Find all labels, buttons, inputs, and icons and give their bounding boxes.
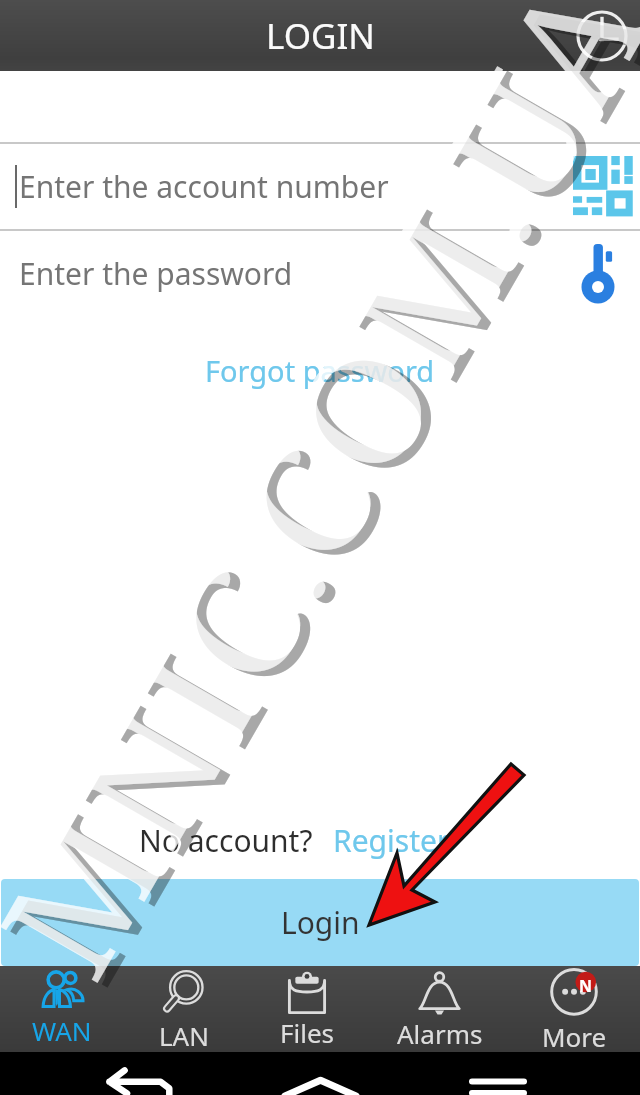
button[interactable]: Enter the account number bbox=[0, 144, 640, 229]
staticText: Enter the password bbox=[19, 253, 293, 294]
staticText: N bbox=[579, 975, 593, 997]
staticText: Files bbox=[280, 1015, 335, 1050]
button[interactable]: Files bbox=[243, 966, 371, 1052]
button[interactable]: Login bbox=[1, 879, 639, 966]
button[interactable]: Recents bbox=[469, 1079, 527, 1095]
button[interactable]: N bbox=[508, 966, 640, 1052]
staticText: No account? bbox=[139, 820, 313, 861]
button[interactable]: Back bbox=[100, 1065, 182, 1095]
button[interactable]: Alarms bbox=[371, 966, 508, 1052]
button[interactable]: Register bbox=[333, 820, 450, 861]
staticText: Alarms bbox=[397, 1016, 483, 1051]
staticText: WAN bbox=[32, 1013, 92, 1048]
button[interactable]: History bbox=[575, 9, 629, 63]
button[interactable]: Home bbox=[285, 1077, 356, 1095]
staticText: Enter the account number bbox=[19, 166, 389, 207]
staticText: LAN bbox=[159, 1018, 209, 1052]
button[interactable]: Show password bbox=[571, 241, 637, 307]
button[interactable]: WAN bbox=[0, 966, 124, 1052]
button[interactable]: Scan QR code bbox=[571, 154, 637, 220]
staticText: Login bbox=[281, 902, 360, 943]
button[interactable]: Forgot password bbox=[205, 351, 435, 390]
button[interactable]: Enter the password bbox=[0, 231, 640, 316]
staticText: LOGIN bbox=[266, 12, 375, 60]
staticText: More bbox=[542, 1019, 607, 1052]
button[interactable]: LAN bbox=[124, 966, 243, 1052]
